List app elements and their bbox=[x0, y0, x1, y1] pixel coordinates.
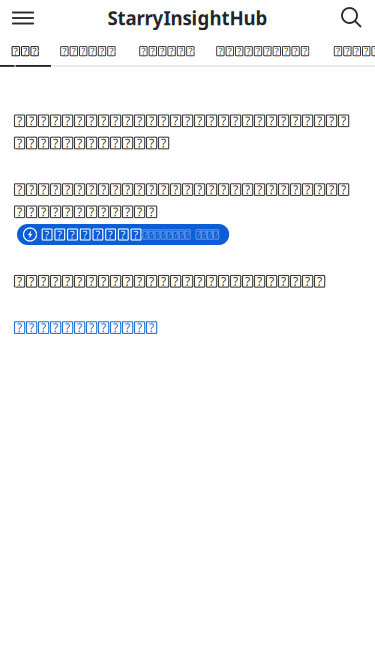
staticText: ? bbox=[125, 182, 130, 197]
staticText: ? bbox=[41, 135, 46, 151]
staticText: ? bbox=[81, 45, 85, 57]
staticText: ? bbox=[108, 227, 113, 242]
staticText: ? bbox=[149, 113, 154, 129]
staticText: ? bbox=[17, 135, 22, 151]
staticText: ? bbox=[269, 113, 274, 129]
staticText: ? bbox=[113, 204, 118, 220]
staticText: ? bbox=[293, 273, 298, 289]
staticText: ? bbox=[89, 320, 94, 335]
button[interactable]: ? bbox=[17, 224, 229, 245]
staticText: ? bbox=[143, 228, 147, 241]
staticText: ? bbox=[41, 113, 46, 129]
staticText: ? bbox=[41, 320, 46, 335]
staticText: ? bbox=[101, 204, 106, 220]
staticText: ? bbox=[269, 182, 274, 197]
staticText: ? bbox=[65, 273, 70, 289]
staticText: ? bbox=[62, 45, 66, 57]
staticText: ? bbox=[17, 204, 22, 220]
staticText: ? bbox=[41, 204, 46, 220]
staticText: ? bbox=[29, 273, 34, 289]
staticText: ? bbox=[72, 45, 76, 57]
staticText: ? bbox=[364, 45, 368, 57]
staticText: ? bbox=[209, 273, 214, 289]
staticText: ? bbox=[137, 135, 142, 151]
staticText: ? bbox=[29, 204, 34, 220]
staticText: ? bbox=[168, 228, 172, 241]
staticText: ? bbox=[293, 113, 298, 129]
staticText: ? bbox=[17, 273, 22, 289]
staticText: StarryInsightHub bbox=[107, 6, 267, 30]
button[interactable]: ? bbox=[321, 46, 375, 56]
staticText: ? bbox=[45, 227, 50, 242]
staticText: ? bbox=[305, 113, 310, 129]
staticText: ? bbox=[233, 182, 238, 197]
staticText: ? bbox=[209, 113, 214, 129]
staticText: ? bbox=[256, 45, 260, 57]
staticText: ? bbox=[173, 273, 178, 289]
staticText: ? bbox=[113, 182, 118, 197]
staticText: ? bbox=[303, 45, 307, 57]
staticText: ? bbox=[149, 228, 153, 241]
staticText: ? bbox=[281, 113, 286, 129]
staticText: ? bbox=[83, 227, 88, 242]
staticText: ? bbox=[89, 204, 94, 220]
button[interactable]: ? bbox=[205, 46, 321, 56]
staticText: ? bbox=[77, 182, 82, 197]
staticText: ? bbox=[141, 45, 145, 57]
staticText: ? bbox=[65, 113, 70, 129]
staticText: ? bbox=[170, 45, 174, 57]
staticText: ? bbox=[101, 113, 106, 129]
staticText: ? bbox=[125, 113, 130, 129]
staticText: ? bbox=[185, 182, 190, 197]
staticText: ? bbox=[161, 228, 165, 241]
staticText: ? bbox=[151, 45, 155, 57]
button[interactable]: ? bbox=[0, 46, 49, 56]
staticText: ? bbox=[336, 45, 340, 57]
button[interactable]: Menu bbox=[0, 0, 46, 37]
staticText: ? bbox=[208, 228, 212, 241]
staticText: ? bbox=[65, 204, 70, 220]
staticText: ? bbox=[53, 182, 58, 197]
staticText: ? bbox=[77, 273, 82, 289]
button[interactable]: ? bbox=[49, 46, 127, 56]
staticText: ? bbox=[221, 182, 226, 197]
staticText: ? bbox=[125, 204, 130, 220]
staticText: ? bbox=[180, 228, 184, 241]
staticText: ? bbox=[185, 273, 190, 289]
staticText: ? bbox=[77, 113, 82, 129]
staticText: ? bbox=[173, 113, 178, 129]
button[interactable]: Search bbox=[329, 0, 375, 37]
staticText: ? bbox=[109, 45, 113, 57]
staticText: ? bbox=[41, 273, 46, 289]
staticText: ? bbox=[57, 227, 62, 242]
staticText: ? bbox=[29, 113, 34, 129]
staticText: ? bbox=[29, 182, 34, 197]
staticText: ? bbox=[29, 320, 34, 335]
staticText: ? bbox=[245, 273, 250, 289]
staticText: ? bbox=[197, 273, 202, 289]
staticText: ? bbox=[77, 204, 82, 220]
staticText: ? bbox=[53, 204, 58, 220]
staticText: ? bbox=[257, 182, 262, 197]
staticText: ? bbox=[70, 227, 75, 242]
staticText: ? bbox=[53, 113, 58, 129]
staticText: ? bbox=[329, 182, 334, 197]
button[interactable]: ? bbox=[127, 46, 205, 56]
staticText: ? bbox=[125, 273, 130, 289]
staticText: ? bbox=[174, 228, 178, 241]
staticText: ? bbox=[149, 204, 154, 220]
staticText: ? bbox=[293, 182, 298, 197]
staticText: ? bbox=[113, 273, 118, 289]
staticText: ? bbox=[221, 113, 226, 129]
staticText: ? bbox=[345, 45, 349, 57]
button[interactable]: ? bbox=[14, 322, 157, 333]
staticText: ? bbox=[221, 273, 226, 289]
staticText: ? bbox=[29, 135, 34, 151]
staticText: ? bbox=[245, 113, 250, 129]
staticText: ? bbox=[137, 113, 142, 129]
staticText: ? bbox=[41, 182, 46, 197]
staticText: ? bbox=[305, 273, 310, 289]
staticText: ? bbox=[160, 45, 164, 57]
staticText: ? bbox=[355, 45, 359, 57]
staticText: ? bbox=[341, 113, 346, 129]
